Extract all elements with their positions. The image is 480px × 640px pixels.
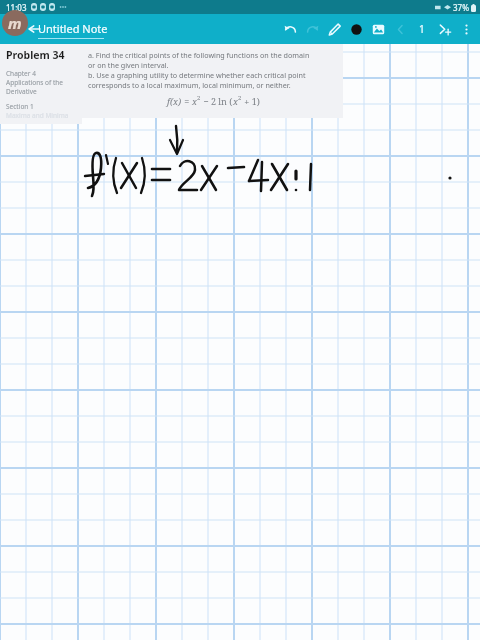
- button[interactable]: Untitled Note: [38, 21, 108, 39]
- staticText: 11:03: [6, 2, 27, 13]
- button[interactable]: Undo: [279, 16, 301, 42]
- staticText: 2: [197, 94, 201, 102]
- staticText: =: [182, 95, 192, 107]
- button[interactable]: More options: [455, 16, 477, 42]
- staticText: b. Use a graphing utility to determine w…: [88, 70, 306, 80]
- staticText: Untitled Note: [38, 21, 108, 36]
- staticText: Maxima and Minima: [6, 111, 69, 120]
- staticText: Problem 34: [6, 48, 65, 62]
- staticText: f: [167, 95, 170, 107]
- button[interactable]: App: [2, 10, 28, 36]
- staticText: x: [192, 95, 197, 107]
- button[interactable]: Pen: [323, 16, 345, 42]
- staticText: or on the given interval.: [88, 60, 169, 70]
- staticText: x: [233, 95, 238, 107]
- staticText: m: [8, 13, 22, 33]
- button[interactable]: Insert image: [367, 16, 389, 42]
- staticText: corresponds to a local maximum, local mi…: [88, 80, 291, 90]
- button[interactable]: Previous page: [389, 16, 411, 42]
- staticText: (x): [170, 95, 182, 107]
- button[interactable]: Redo: [301, 16, 323, 42]
- staticText: Section 1: [6, 102, 34, 111]
- button[interactable]: 1: [411, 16, 433, 42]
- staticText: Applications of the Derivative: [6, 78, 63, 96]
- staticText: 1: [419, 22, 425, 36]
- staticText: − 2 ln (: [201, 95, 233, 107]
- staticText: Chapter 4: [6, 69, 36, 78]
- button[interactable]: Back: [24, 19, 44, 39]
- staticText: 2: [238, 94, 242, 102]
- staticText: + 1): [242, 95, 260, 107]
- button[interactable]: Colour: [345, 16, 367, 42]
- staticText: 37%: [453, 2, 469, 13]
- staticText: a. Find the critical points of the follo…: [88, 50, 310, 60]
- button[interactable]: Add page: [433, 16, 455, 42]
